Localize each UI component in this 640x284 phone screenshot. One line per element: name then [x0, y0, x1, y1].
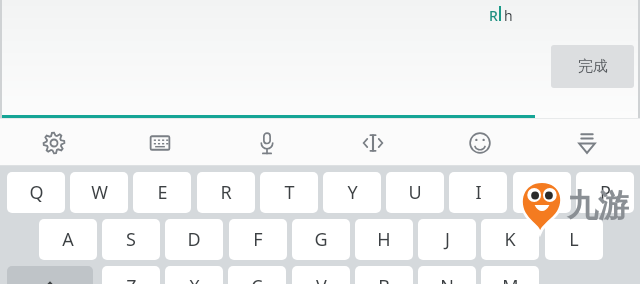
- staticText: D: [187, 227, 201, 252]
- button[interactable]: V: [292, 266, 350, 284]
- button[interactable]: G: [292, 219, 350, 260]
- staticText: H: [377, 227, 391, 252]
- staticText: Z: [126, 274, 137, 284]
- button[interactable]: Move cursor: [347, 119, 399, 166]
- staticText: B: [378, 274, 390, 284]
- staticText: U: [408, 180, 422, 205]
- staticText: X: [189, 274, 200, 284]
- button[interactable]: T: [260, 172, 318, 213]
- button[interactable]: Hide keyboard: [561, 119, 613, 166]
- button[interactable]: E: [133, 172, 191, 213]
- button[interactable]: A: [39, 219, 97, 260]
- button[interactable]: 完成: [551, 45, 634, 88]
- button[interactable]: W: [70, 172, 128, 213]
- button[interactable]: Q: [7, 172, 65, 213]
- button[interactable]: F: [229, 219, 287, 260]
- staticText: R: [220, 180, 232, 205]
- staticText: J: [445, 227, 450, 252]
- button[interactable]: J: [418, 219, 476, 260]
- staticText: N: [440, 274, 454, 284]
- button[interactable]: R: [197, 172, 255, 213]
- button[interactable]: L: [545, 219, 603, 260]
- staticText: G: [314, 227, 328, 252]
- staticText: Q: [29, 180, 44, 205]
- button[interactable]: O: [513, 172, 571, 213]
- button[interactable]: S: [102, 219, 160, 260]
- staticText: R: [489, 6, 498, 25]
- staticText: A: [62, 227, 74, 252]
- button[interactable]: Switch keyboard: [134, 119, 186, 166]
- staticText: S: [126, 227, 136, 252]
- button[interactable]: Voice input: [241, 119, 293, 166]
- button[interactable]: U: [386, 172, 444, 213]
- staticText: 九游: [567, 186, 629, 225]
- button[interactable]: X: [165, 266, 223, 284]
- staticText: I: [475, 180, 482, 205]
- staticText: W: [91, 180, 108, 205]
- staticText: F: [253, 227, 263, 252]
- button[interactable]: M: [481, 266, 539, 284]
- button[interactable]: N: [418, 266, 476, 284]
- staticText: L: [569, 227, 579, 252]
- button[interactable]: Settings: [28, 119, 80, 166]
- staticText: M: [502, 274, 519, 284]
- staticText: h: [504, 6, 513, 25]
- staticText: K: [504, 227, 516, 252]
- staticText: C: [251, 274, 263, 284]
- button[interactable]: K: [481, 219, 539, 260]
- button[interactable]: Z: [102, 266, 160, 284]
- button[interactable]: Shift: [7, 266, 93, 284]
- staticText: P: [600, 180, 611, 205]
- staticText: 完成: [578, 57, 608, 76]
- staticText: E: [157, 180, 168, 205]
- button[interactable]: Y: [323, 172, 381, 213]
- staticText: V: [316, 274, 327, 284]
- button[interactable]: P: [576, 172, 634, 213]
- button[interactable]: D: [165, 219, 223, 260]
- button[interactable]: I: [449, 172, 507, 213]
- button[interactable]: B: [355, 266, 413, 284]
- staticText: Y: [347, 180, 358, 205]
- staticText: T: [284, 180, 295, 205]
- button[interactable]: H: [355, 219, 413, 260]
- button[interactable]: C: [228, 266, 286, 284]
- staticText: O: [535, 180, 550, 205]
- button[interactable]: Emoji: [454, 119, 506, 166]
